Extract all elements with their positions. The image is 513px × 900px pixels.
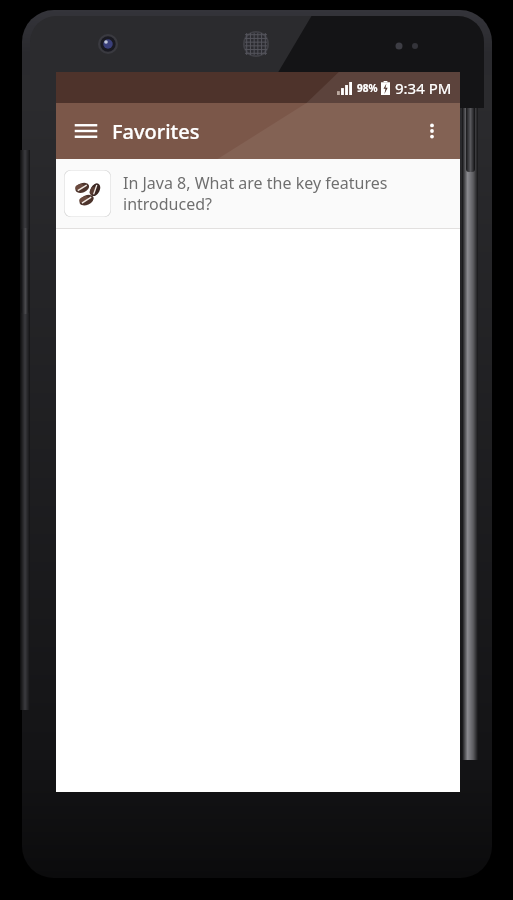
staticText: Favorites [112, 118, 200, 145]
button[interactable]: More options [408, 107, 456, 155]
button[interactable]: Open navigation drawer [62, 107, 110, 155]
staticText: In Java 8, What are the key features int… [123, 172, 388, 215]
staticText: 9:34 PM [395, 78, 452, 98]
staticText: 98% [357, 81, 378, 95]
button[interactable]: In Java 8, What are the key features int… [56, 159, 460, 229]
